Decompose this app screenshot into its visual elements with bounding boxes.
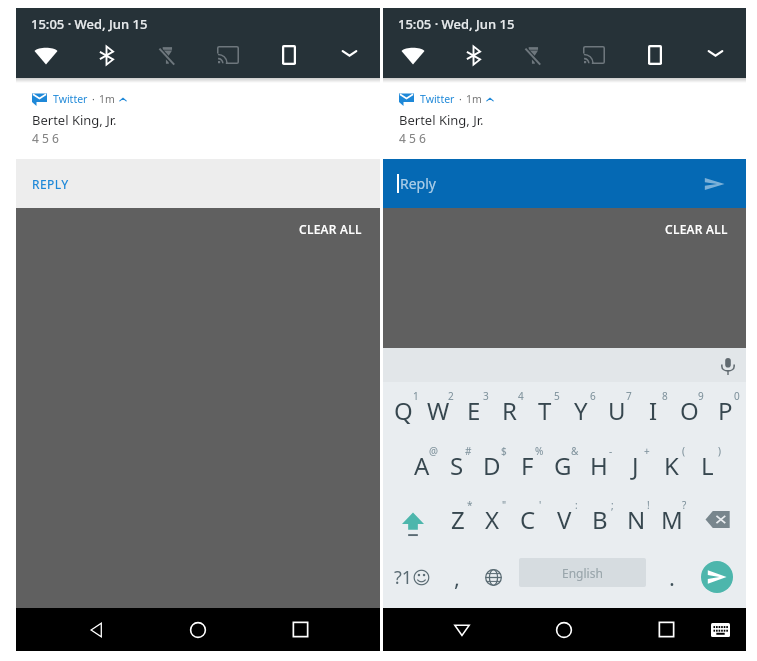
staticText: Q bbox=[394, 394, 413, 427]
button[interactable]: Comma bbox=[440, 546, 474, 608]
button[interactable]: U bbox=[599, 382, 635, 438]
button[interactable]: Send bbox=[699, 546, 735, 608]
button[interactable]: Home bbox=[178, 608, 218, 651]
button[interactable]: Switch keyboard bbox=[700, 608, 740, 651]
button[interactable]: Cast bbox=[197, 37, 258, 73]
button[interactable]: Hide keyboard bbox=[442, 608, 482, 651]
button[interactable]: M bbox=[654, 492, 690, 546]
button[interactable]: Bluetooth bbox=[443, 37, 503, 73]
staticText: Reply bbox=[400, 174, 436, 193]
staticText: 5 bbox=[554, 389, 560, 403]
button[interactable]: Expand bbox=[319, 37, 380, 73]
staticText: J bbox=[632, 449, 639, 482]
staticText: 8 bbox=[662, 389, 668, 403]
button[interactable]: T bbox=[527, 382, 563, 438]
button[interactable]: S bbox=[439, 438, 474, 492]
button[interactable]: D bbox=[474, 438, 509, 492]
button[interactable]: Period bbox=[655, 546, 689, 608]
staticText: # bbox=[465, 444, 472, 458]
staticText: 15:05 · Wed, Jun 15 bbox=[31, 15, 148, 33]
staticText: * bbox=[467, 498, 473, 512]
button[interactable]: R bbox=[491, 382, 527, 438]
button[interactable]: CLEAR ALL bbox=[665, 221, 728, 237]
button[interactable]: X bbox=[475, 492, 510, 546]
staticText: U bbox=[608, 394, 626, 427]
button[interactable]: Q bbox=[386, 382, 421, 438]
button[interactable]: Recents bbox=[646, 608, 686, 651]
staticText: Twitter bbox=[420, 92, 455, 106]
staticText: F bbox=[521, 449, 534, 482]
button[interactable]: Display bbox=[624, 37, 685, 73]
staticText: 1m bbox=[99, 92, 115, 106]
button[interactable]: I bbox=[635, 382, 671, 438]
button[interactable]: B bbox=[582, 492, 618, 546]
staticText: 4 5 6 bbox=[399, 130, 426, 146]
staticText: ) bbox=[718, 444, 721, 458]
staticText: W bbox=[427, 394, 450, 427]
button[interactable]: P bbox=[707, 382, 743, 438]
staticText: 9 bbox=[698, 389, 704, 403]
staticText: : bbox=[575, 498, 578, 512]
staticText: C bbox=[520, 503, 536, 536]
staticText: ? bbox=[682, 498, 687, 512]
button[interactable]: Change language bbox=[475, 546, 511, 608]
button[interactable]: Display bbox=[258, 37, 319, 73]
button[interactable]: Recents bbox=[280, 608, 320, 651]
staticText: ?1☺ bbox=[394, 565, 431, 590]
button[interactable]: H bbox=[581, 438, 617, 492]
button[interactable]: K bbox=[653, 438, 689, 492]
button[interactable]: Reply bbox=[383, 159, 746, 208]
button[interactable]: Y bbox=[563, 382, 599, 438]
button[interactable]: REPLY bbox=[16, 159, 380, 208]
button[interactable]: English bbox=[519, 558, 646, 587]
staticText: REPLY bbox=[32, 176, 69, 192]
staticText: . bbox=[669, 562, 675, 592]
button[interactable]: Home bbox=[544, 608, 584, 651]
button[interactable]: G bbox=[545, 438, 581, 492]
staticText: 7 bbox=[626, 389, 632, 403]
button[interactable]: Wi-Fi bbox=[16, 37, 76, 73]
staticText: D bbox=[483, 449, 501, 482]
staticText: Z bbox=[451, 503, 465, 536]
staticText: ( bbox=[682, 444, 685, 458]
staticText: 4 bbox=[518, 389, 524, 403]
button[interactable]: Shift bbox=[383, 492, 440, 546]
button[interactable]: Cast bbox=[563, 37, 624, 73]
button[interactable]: Wi-Fi bbox=[383, 37, 443, 73]
staticText: - bbox=[609, 444, 613, 458]
button[interactable]: F bbox=[509, 438, 545, 492]
button[interactable]: E bbox=[456, 382, 491, 438]
button[interactable]: O bbox=[671, 382, 707, 438]
button[interactable]: Flashlight bbox=[136, 37, 197, 73]
button[interactable]: Expand bbox=[685, 37, 746, 73]
staticText: English bbox=[562, 565, 603, 581]
staticText: + bbox=[644, 444, 650, 458]
button[interactable]: N bbox=[618, 492, 654, 546]
button[interactable]: V bbox=[546, 492, 582, 546]
button[interactable]: Flashlight bbox=[503, 37, 563, 73]
button[interactable]: Symbols bbox=[393, 546, 432, 608]
staticText: Bertel King, Jr. bbox=[32, 111, 117, 129]
staticText: O bbox=[680, 394, 699, 427]
button[interactable]: Backspace bbox=[690, 492, 746, 546]
button[interactable]: J bbox=[617, 438, 653, 492]
staticText: " bbox=[502, 498, 507, 512]
button[interactable]: C bbox=[510, 492, 546, 546]
staticText: 1m bbox=[466, 92, 482, 106]
staticText: S bbox=[450, 449, 464, 482]
staticText: Twitter bbox=[53, 92, 88, 106]
button[interactable]: W bbox=[421, 382, 456, 438]
staticText: Y bbox=[574, 394, 588, 427]
staticText: E bbox=[467, 394, 481, 427]
staticText: , bbox=[454, 562, 460, 592]
button[interactable]: CLEAR ALL bbox=[299, 221, 362, 237]
button[interactable]: Bluetooth bbox=[76, 37, 136, 73]
button[interactable]: Back bbox=[76, 608, 116, 651]
button[interactable]: A bbox=[404, 438, 439, 492]
staticText: N bbox=[627, 503, 646, 536]
button[interactable]: L bbox=[689, 438, 725, 492]
staticText: @ bbox=[429, 444, 438, 458]
staticText: A bbox=[414, 449, 430, 482]
button[interactable]: Z bbox=[440, 492, 475, 546]
staticText: & bbox=[571, 444, 579, 458]
